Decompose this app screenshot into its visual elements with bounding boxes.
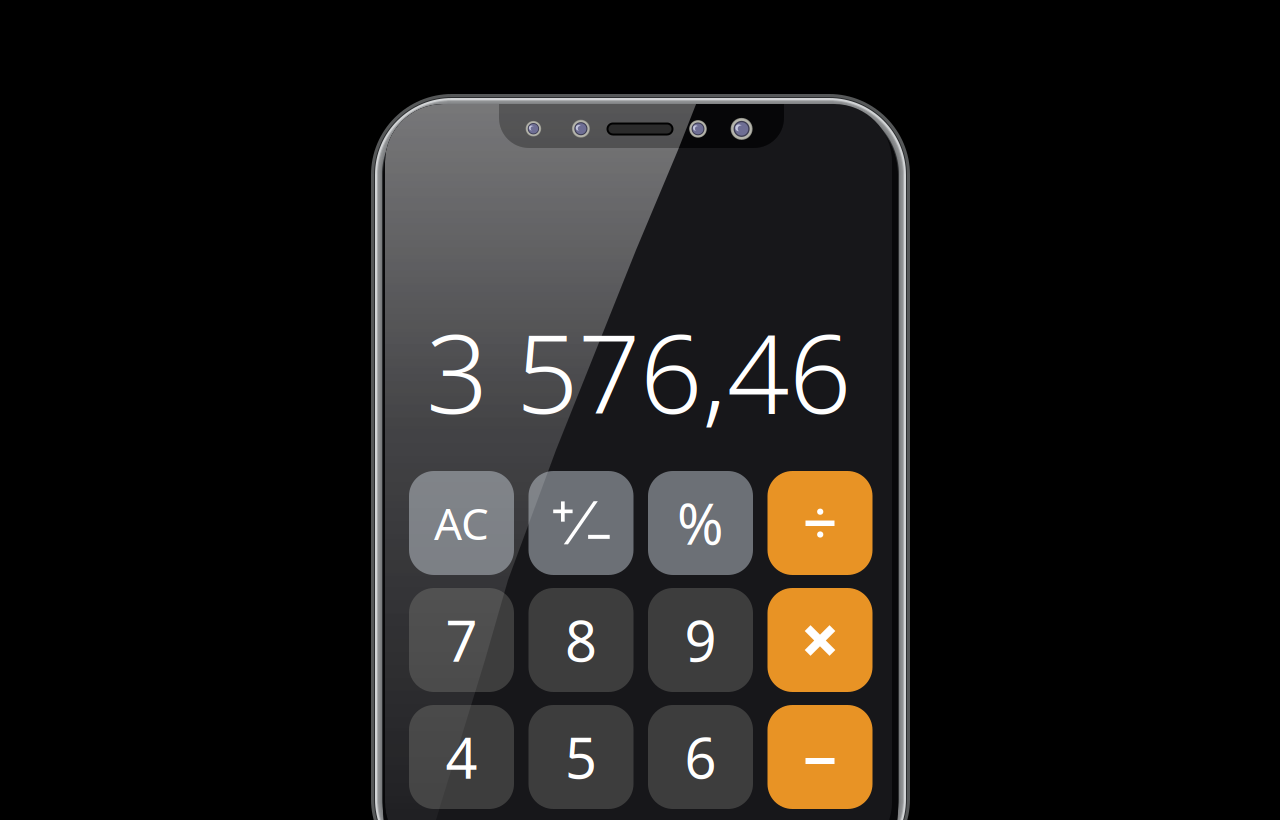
button[interactable]: Minus [767,705,872,809]
staticText: 3 576,46 [426,298,851,444]
button[interactable]: % [648,471,753,575]
button[interactable]: 9 [648,588,753,692]
staticText: 8 [565,603,597,677]
button[interactable]: 5 [528,705,633,809]
button[interactable]: 6 [648,705,753,809]
button[interactable]: 7 [409,588,514,692]
button[interactable]: 8 [528,588,633,692]
staticText: % [677,486,724,560]
button[interactable]: Plus minus [528,471,633,575]
button[interactable]: 4 [409,705,514,809]
staticText: 4 [445,720,477,794]
staticText: 7 [445,603,477,677]
staticText: 9 [684,603,716,677]
button[interactable]: AC [409,471,514,575]
staticText: 6 [684,720,716,794]
button[interactable]: Divide [767,471,872,575]
button[interactable]: Multiply [767,588,872,692]
staticText: 5 [565,720,597,794]
staticText: AC [434,494,489,552]
